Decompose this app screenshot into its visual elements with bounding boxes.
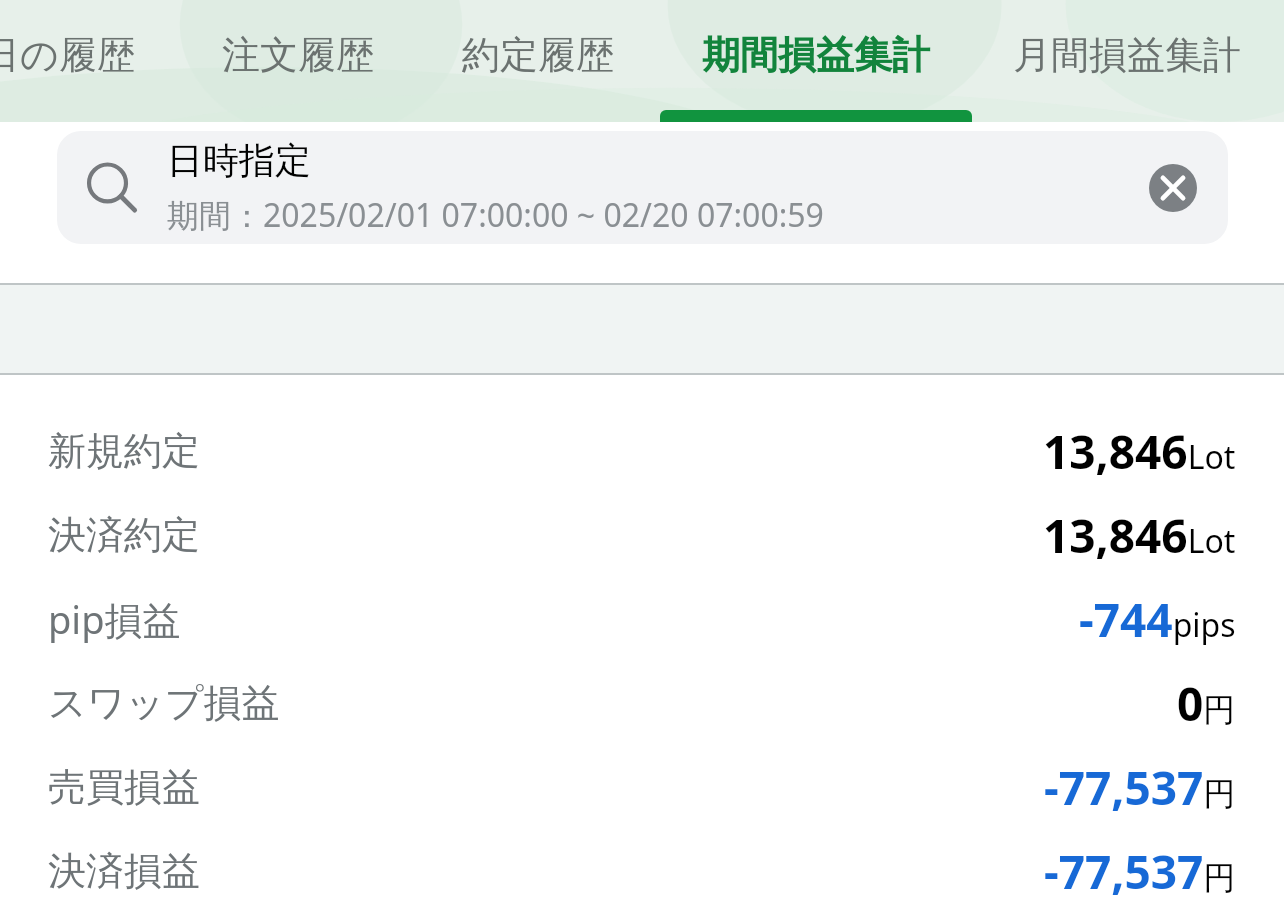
staticText: 期間：2025/02/01 07:00:00 ~ 02/20 07:00:59 [167, 193, 824, 237]
button[interactable]: 約定履歴 [458, 0, 618, 110]
staticText: スワップ損益 [48, 679, 280, 727]
staticText: 日の履歴 [0, 31, 135, 79]
staticText: -744pips [1079, 588, 1236, 651]
staticText: 売買損益 [48, 763, 200, 811]
button[interactable]: 月間損益集計 [1007, 0, 1247, 110]
button[interactable]: 日の履歴 [0, 0, 138, 110]
button[interactable]: pip損益 [0, 577, 1284, 661]
staticText: 月間損益集計 [1013, 31, 1241, 79]
staticText: -77,537円 [1044, 840, 1236, 903]
staticText: 日時指定 [167, 138, 311, 183]
staticText: 13,846Lot [1043, 420, 1236, 483]
button[interactable]: スワップ損益 [0, 661, 1284, 745]
button[interactable]: 売買損益 [0, 745, 1284, 829]
staticText: 決済損益 [48, 847, 200, 895]
staticText: 約定履歴 [462, 31, 614, 79]
staticText: 0円 [1177, 672, 1236, 735]
staticText: -77,537円 [1044, 756, 1236, 819]
button[interactable]: 決済損益 [0, 829, 1284, 913]
button[interactable]: 注文履歴 [218, 0, 378, 110]
staticText: pip損益 [48, 593, 181, 645]
staticText: 13,846Lot [1043, 504, 1236, 567]
staticText: 期間損益集計 [702, 31, 930, 79]
staticText: 注文履歴 [222, 31, 374, 79]
staticText: 決済約定 [48, 511, 200, 559]
button[interactable]: 期間損益集計 [696, 0, 936, 110]
staticText: 新規約定 [48, 427, 200, 475]
button[interactable]: Clear [1118, 131, 1228, 244]
button[interactable]: 新規約定 [0, 409, 1284, 493]
button[interactable]: 日時指定 [57, 131, 1228, 244]
button[interactable]: 決済約定 [0, 493, 1284, 577]
